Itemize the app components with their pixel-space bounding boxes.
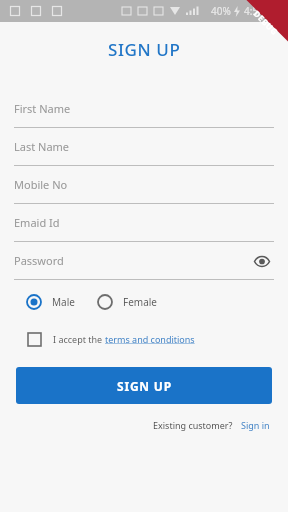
staticText: 40% [211,4,231,18]
button[interactable]: I accept the [28,327,288,351]
button[interactable]: SIGN UP [16,367,272,404]
staticText: First Name [14,101,71,116]
staticText: Female [123,295,158,309]
staticText: 4:54 am [244,4,282,18]
staticText: Last Name [14,139,70,154]
staticText: Mobile No [14,177,68,192]
button[interactable]: Show password [250,249,274,273]
button[interactable]: Female [97,294,158,310]
staticText: I accept the [53,333,105,345]
staticText: Sign in [241,419,270,431]
staticText: Existing customer? [153,419,233,431]
staticText: Password [14,253,64,268]
button[interactable]: Sign in [241,419,270,431]
staticText: terms and conditions [105,333,195,345]
staticText: Emaid Id [14,215,60,230]
staticText: SIGN UP [108,38,181,61]
staticText: SIGN UP [117,378,172,394]
staticText: Male [52,295,75,309]
staticText: DEBUG [251,8,280,37]
button[interactable]: Male [26,294,75,310]
